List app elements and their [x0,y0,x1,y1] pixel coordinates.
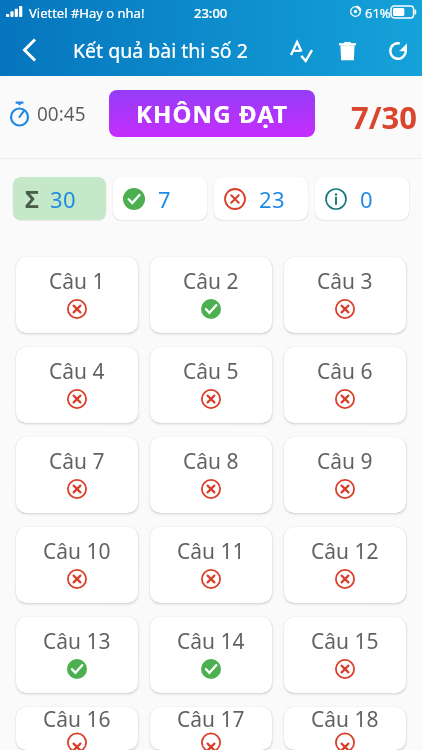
button[interactable]: Câu 13 [16,617,138,693]
staticText: 61% [365,4,391,22]
button[interactable]: Câu 2 [150,257,272,333]
staticText: 7 [158,184,172,214]
button[interactable]: Câu 1 [16,257,138,333]
button[interactable]: 0 [315,177,409,220]
button[interactable]: 7 [113,177,207,220]
button[interactable]: Câu 17 [150,707,272,750]
staticText: 0 [360,184,374,214]
button[interactable]: Câu 5 [150,347,272,423]
staticText: Câu 15 [311,627,379,656]
staticText: Σ [25,182,39,215]
button[interactable]: Câu 10 [16,527,138,603]
button[interactable]: Câu 9 [284,437,406,513]
button[interactable]: Câu 12 [284,527,406,603]
staticText: Câu 8 [183,447,239,476]
staticText: Câu 14 [177,627,245,656]
button[interactable]: Câu 18 [284,707,406,750]
staticText: 23:00 [194,4,228,22]
button[interactable]: Câu 7 [16,437,138,513]
staticText: Câu 18 [311,707,379,734]
staticText: 00:45 [37,101,86,127]
staticText: 23 [259,184,286,214]
staticText: 30 [50,184,77,214]
button[interactable]: Spellcheck [278,28,324,74]
staticText: Kết quả bài thi số 2 [73,37,248,64]
button[interactable]: Σ [13,177,106,220]
button[interactable]: Câu 6 [284,347,406,423]
button[interactable]: Refresh [374,27,422,75]
button[interactable]: Back [4,25,54,75]
button[interactable]: Câu 8 [150,437,272,513]
staticText: Câu 12 [311,537,379,566]
staticText: Câu 6 [317,357,373,386]
staticText: Câu 13 [43,627,111,656]
staticText: KHÔNG ĐẠT [136,97,289,130]
button[interactable]: Câu 4 [16,347,138,423]
button[interactable]: Delete [324,28,370,74]
staticText: Câu 9 [317,447,373,476]
staticText: Câu 3 [317,267,373,296]
button[interactable]: Câu 14 [150,617,272,693]
button[interactable]: Câu 15 [284,617,406,693]
staticText: Câu 7 [49,447,105,476]
staticText: Viettel #Hay o nha! [29,4,145,22]
staticText: Câu 11 [177,537,245,566]
button[interactable]: KHÔNG ĐẠT [109,90,315,137]
button[interactable]: Câu 11 [150,527,272,603]
staticText: Câu 10 [43,537,111,566]
button[interactable]: 23 [214,177,308,220]
staticText: 7/30 [351,96,418,138]
staticText: Câu 4 [49,357,105,386]
button[interactable]: Câu 3 [284,257,406,333]
button[interactable]: Câu 16 [16,707,138,750]
staticText: Câu 5 [183,357,239,386]
staticText: Câu 17 [177,707,245,734]
staticText: Câu 1 [49,267,105,296]
staticText: Câu 2 [183,267,239,296]
staticText: Câu 16 [43,707,111,734]
